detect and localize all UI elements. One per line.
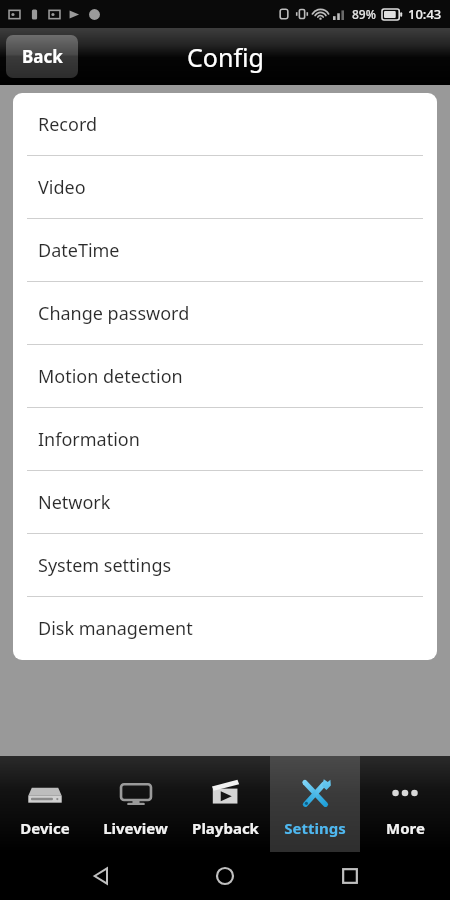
staticText: Back bbox=[22, 45, 63, 68]
button[interactable]: Device bbox=[0, 756, 90, 852]
button[interactable]: Video bbox=[13, 156, 437, 219]
button[interactable]: Home bbox=[201, 852, 249, 900]
button[interactable]: Settings bbox=[270, 756, 360, 852]
staticText: 89% bbox=[352, 6, 376, 22]
staticText: Liveview bbox=[103, 818, 168, 838]
button[interactable]: Motion detection bbox=[13, 345, 437, 408]
staticText: Motion detection bbox=[38, 364, 183, 389]
button[interactable]: Back bbox=[77, 852, 125, 900]
staticText: Playback bbox=[192, 818, 259, 838]
button[interactable]: Back bbox=[6, 35, 78, 78]
button[interactable]: Information bbox=[13, 408, 437, 471]
staticText: 10:43 bbox=[408, 5, 442, 23]
staticText: DateTime bbox=[38, 238, 120, 263]
button[interactable]: Recent apps bbox=[326, 852, 374, 900]
button[interactable]: Liveview bbox=[90, 756, 180, 852]
button[interactable]: Disk management bbox=[13, 597, 437, 660]
staticText: Network bbox=[38, 490, 111, 515]
button[interactable]: More bbox=[360, 756, 450, 852]
staticText: Disk management bbox=[38, 616, 193, 641]
button[interactable]: System settings bbox=[13, 534, 437, 597]
staticText: More bbox=[386, 818, 425, 838]
staticText: Device bbox=[20, 818, 70, 838]
staticText: Config bbox=[187, 40, 264, 74]
button[interactable]: Record bbox=[13, 93, 437, 156]
staticText: Settings bbox=[284, 818, 346, 838]
button[interactable]: Network bbox=[13, 471, 437, 534]
staticText: Change password bbox=[38, 301, 190, 326]
staticText: Information bbox=[38, 427, 140, 452]
button[interactable]: DateTime bbox=[13, 219, 437, 282]
staticText: Record bbox=[38, 112, 98, 137]
button[interactable]: Change password bbox=[13, 282, 437, 345]
staticText: System settings bbox=[38, 553, 172, 578]
staticText: Video bbox=[38, 175, 86, 200]
button[interactable]: Playback bbox=[180, 756, 270, 852]
